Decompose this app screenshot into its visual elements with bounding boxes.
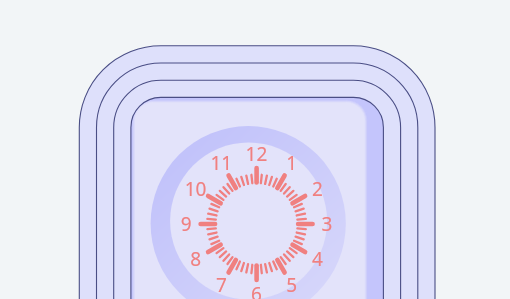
button[interactable]: Clock face	[0, 0, 510, 299]
